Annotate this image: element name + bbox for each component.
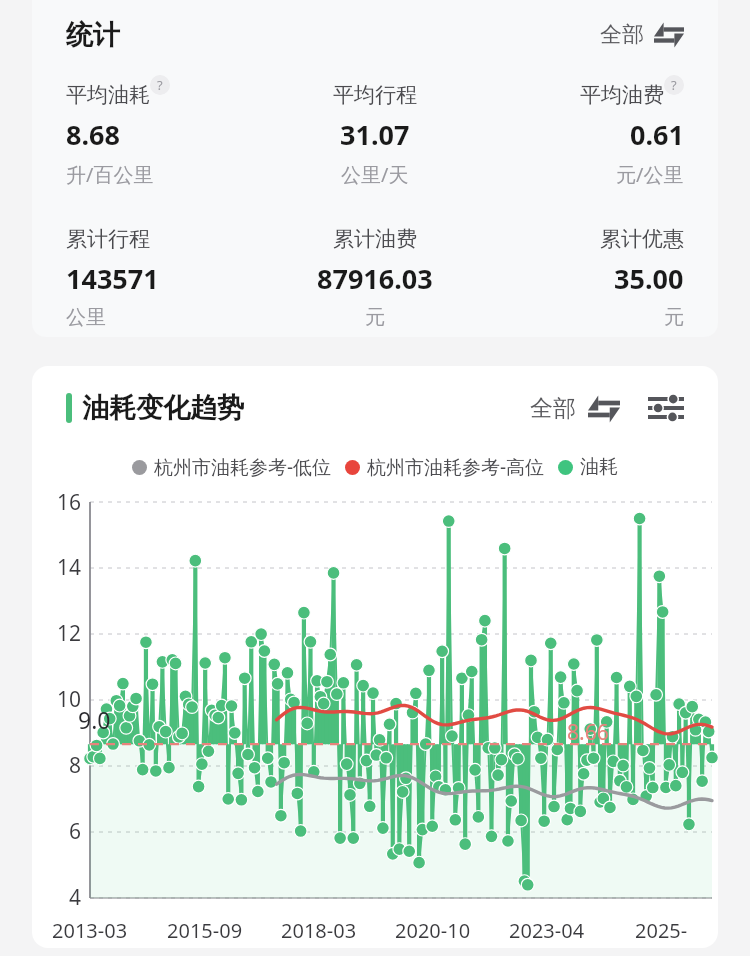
staticText: 2018-03 bbox=[281, 917, 357, 944]
other: Sort order bbox=[588, 396, 620, 422]
staticText: 143571 bbox=[66, 260, 159, 297]
staticText: 元/公里 bbox=[616, 161, 684, 188]
staticText: 14 bbox=[57, 553, 82, 582]
staticText: 累计行程 bbox=[66, 226, 150, 252]
staticText: 16 bbox=[57, 488, 82, 517]
button[interactable]: Chart settings bbox=[648, 394, 684, 422]
staticText: 2025- bbox=[635, 917, 688, 944]
staticText: 8 bbox=[69, 751, 82, 780]
staticText: 平均油费 bbox=[580, 82, 664, 108]
staticText: 元 bbox=[664, 305, 684, 330]
button[interactable]: 全部 bbox=[530, 394, 620, 423]
button[interactable]: 平均行程 bbox=[272, 82, 478, 188]
staticText: 公里 bbox=[66, 305, 106, 330]
staticText: 杭州市油耗参考-低位 bbox=[154, 454, 332, 480]
button[interactable]: 平均油费 bbox=[478, 82, 684, 188]
staticText: 31.07 bbox=[340, 116, 410, 153]
staticText: 平均行程 bbox=[333, 82, 417, 108]
button[interactable]: 全部 bbox=[600, 21, 684, 49]
staticText: 累计油费 bbox=[333, 226, 417, 252]
staticText: 全部 bbox=[600, 21, 644, 49]
staticText: 平均油耗 bbox=[66, 82, 150, 108]
button[interactable]: 平均油耗 bbox=[66, 82, 272, 188]
staticText: 35.00 bbox=[614, 260, 684, 297]
staticText: 油耗 bbox=[580, 455, 618, 479]
staticText: 升/百公里 bbox=[66, 161, 154, 188]
staticText: 6 bbox=[69, 817, 82, 846]
button[interactable]: 累计优惠 bbox=[478, 226, 684, 330]
staticText: 87916.03 bbox=[317, 260, 433, 297]
staticText: 2020-10 bbox=[395, 917, 471, 944]
button[interactable]: 累计行程 bbox=[66, 226, 272, 330]
staticText: 0.61 bbox=[630, 116, 684, 153]
staticText: 9.0 bbox=[78, 704, 111, 735]
staticText: 公里/天 bbox=[341, 161, 409, 188]
staticText: 8.66 bbox=[567, 718, 609, 747]
staticText: 2023-04 bbox=[509, 917, 585, 944]
other: Sort order bbox=[654, 23, 684, 47]
staticText: 2013-03 bbox=[52, 917, 128, 944]
staticText: 12 bbox=[57, 619, 82, 648]
staticText: 全部 bbox=[530, 394, 576, 423]
staticText: ? bbox=[671, 76, 677, 94]
staticText: 元 bbox=[365, 305, 385, 330]
staticText: 10 bbox=[57, 685, 82, 714]
staticText: ? bbox=[157, 76, 163, 94]
staticText: 4 bbox=[69, 883, 82, 912]
button[interactable]: 累计油费 bbox=[272, 226, 478, 330]
staticText: 累计优惠 bbox=[600, 226, 684, 252]
staticText: 杭州市油耗参考-高位 bbox=[367, 454, 545, 480]
staticText: 8.68 bbox=[66, 116, 120, 153]
staticText: 统计 bbox=[66, 18, 120, 52]
staticText: 2015-09 bbox=[167, 917, 243, 944]
staticText: 油耗变化趋势 bbox=[82, 391, 244, 425]
